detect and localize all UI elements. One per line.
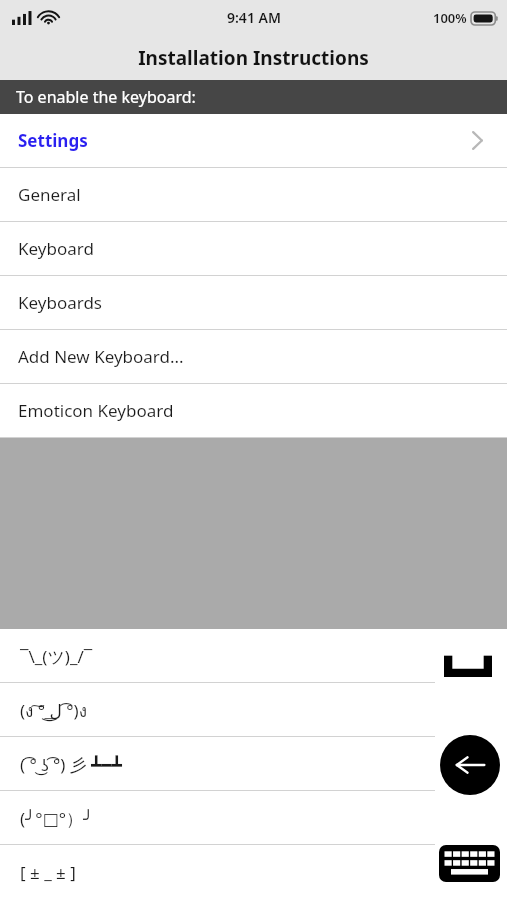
button[interactable]: Back	[440, 735, 500, 795]
button[interactable]: Settings	[0, 114, 507, 167]
button[interactable]: ( ͡° ͜ʖ ͡°) 彡 ┻━┻	[0, 737, 507, 791]
staticText: Keyboards	[18, 291, 102, 314]
staticText: (╯°□°）╯	[20, 807, 94, 830]
staticText: General	[18, 183, 81, 206]
staticText: ¯\_(ツ)_/¯	[20, 645, 93, 668]
button[interactable]: ¯\_(ツ)_/¯	[0, 629, 507, 683]
button[interactable]: General	[0, 168, 507, 221]
button[interactable]: (ง ͠° ͟ل͜ ͡°)ง	[0, 683, 507, 737]
button[interactable]: Add New Keyboard...	[0, 330, 507, 383]
staticText: Installation Instructions	[138, 45, 369, 71]
staticText: 9:41 AM	[227, 8, 281, 27]
staticText: [ ± _ ± ]	[20, 861, 76, 884]
button[interactable]: Space	[444, 651, 492, 677]
button[interactable]: Keyboard	[0, 222, 507, 275]
button[interactable]: [ ± _ ± ]	[0, 845, 507, 899]
staticText: Emoticon Keyboard	[18, 399, 174, 422]
staticText: 100%	[433, 9, 467, 27]
staticText: (ง ͠° ͟ل͜ ͡°)ง	[20, 697, 87, 724]
button[interactable]: Emoticon Keyboard	[0, 384, 507, 437]
staticText: Add New Keyboard...	[18, 345, 184, 368]
staticText: Settings	[18, 129, 88, 152]
button[interactable]: Keyboard	[439, 845, 500, 882]
button[interactable]: Keyboards	[0, 276, 507, 329]
staticText: Keyboard	[18, 237, 94, 260]
staticText: ( ͡° ͜ʖ ͡°) 彡 ┻━┻	[20, 753, 122, 776]
staticText: To enable the keyboard:	[16, 86, 196, 108]
button[interactable]: (╯°□°）╯	[0, 791, 507, 845]
